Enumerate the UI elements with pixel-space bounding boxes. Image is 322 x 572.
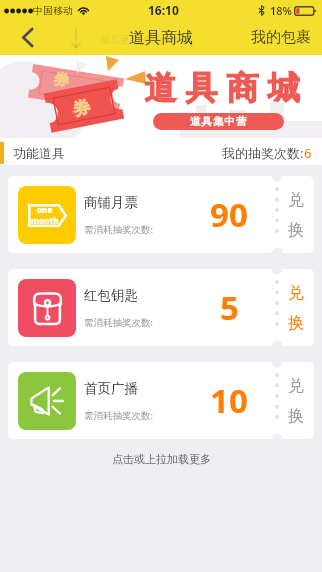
button[interactable]: Back: [0, 20, 50, 55]
staticText: 兑 换: [288, 376, 304, 426]
staticText: 需消耗抽奖次数:: [84, 316, 154, 329]
button[interactable]: 兑 换: [277, 362, 314, 439]
button[interactable]: 兑 换: [277, 176, 314, 253]
staticText: 道具商城: [140, 68, 304, 108]
staticText: 道具商城: [129, 28, 193, 48]
button[interactable]: 红包钥匙: [8, 269, 314, 346]
staticText: 90: [210, 192, 248, 237]
staticText: 中国移动: [33, 4, 73, 17]
staticText: 道具集中营: [190, 115, 248, 128]
staticText: 5: [220, 285, 239, 330]
staticText: month: [31, 215, 59, 226]
staticText: 券: [71, 96, 92, 120]
staticText: 10: [210, 378, 248, 423]
staticText: 兑 换: [288, 283, 304, 333]
staticText: 我的包裹: [251, 28, 311, 47]
staticText: 需消耗抽奖次数:: [84, 409, 154, 422]
button[interactable]: 首页广播: [8, 362, 314, 439]
staticText: 6: [304, 144, 312, 162]
staticText: 商铺月票: [84, 194, 138, 211]
button[interactable]: 兑 换: [277, 269, 314, 346]
staticText: 券: [52, 70, 70, 91]
staticText: 18%: [270, 3, 292, 18]
staticText: 红包钥匙: [84, 287, 138, 304]
staticText: 兑 换: [288, 190, 304, 240]
staticText: 点击或上拉加载更多: [112, 452, 211, 466]
staticText: 功能道具: [13, 145, 65, 161]
staticText: 首页广播: [84, 380, 138, 397]
staticText: one: [37, 204, 53, 215]
staticText: 16:10: [148, 2, 179, 18]
staticText: 最后更新:今天 16:10: [100, 32, 191, 46]
staticText: 我的抽奖次数:: [222, 144, 304, 162]
staticText: 需消耗抽奖次数:: [84, 223, 154, 236]
button[interactable]: one: [8, 176, 314, 253]
button[interactable]: 我的包裹: [0, 20, 311, 55]
